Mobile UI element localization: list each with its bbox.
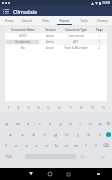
staticText: . — [92, 155, 93, 159]
staticText: Residential — [15, 40, 30, 44]
button[interactable]: 0 — [98, 103, 109, 112]
staticText: Tools — [80, 19, 88, 23]
button[interactable]: d — [28, 129, 39, 140]
button[interactable]: Enter — [105, 129, 111, 140]
staticText: x — [25, 143, 28, 149]
button[interactable]: 3 — [23, 103, 33, 112]
staticText: 1 — [7, 105, 10, 111]
button[interactable]: Backspace — [105, 118, 111, 129]
staticText: f — [44, 132, 46, 138]
button[interactable]: Report — [55, 16, 74, 25]
button[interactable]: 1 — [3, 103, 13, 112]
button[interactable]: Recent apps — [59, 168, 78, 180]
staticText: , — [20, 155, 21, 159]
staticText: Document Type — [65, 28, 87, 32]
staticText: 6 — [58, 105, 61, 111]
button[interactable]: 2 — [13, 103, 23, 112]
button[interactable]: 7 — [65, 103, 76, 112]
button[interactable]: Search — [18, 16, 36, 25]
button[interactable]: q — [1, 118, 12, 129]
button[interactable]: Home — [0, 16, 18, 25]
button[interactable]: v — [41, 140, 51, 151]
button[interactable]: Residential — [5, 39, 107, 45]
button[interactable]: t — [45, 118, 55, 129]
button[interactable]: ⇧ — [1, 140, 11, 151]
button[interactable]: f — [39, 129, 50, 140]
button[interactable]: ? — [91, 140, 101, 151]
button[interactable]: r — [34, 118, 45, 129]
button[interactable]: k — [83, 129, 94, 140]
button[interactable]: Back — [21, 168, 40, 180]
button[interactable]: s — [16, 129, 28, 140]
button[interactable]: w — [12, 118, 23, 129]
button[interactable]: History — [93, 16, 112, 25]
staticText: ?123 — [5, 155, 12, 159]
staticText: History — [97, 19, 108, 23]
staticText: 7 — [69, 105, 72, 111]
button[interactable]: x — [21, 140, 31, 151]
staticText: p — [99, 121, 102, 127]
button[interactable]: No — [5, 45, 107, 51]
staticText: Climsdale — [13, 8, 38, 15]
staticText: Page — [96, 28, 103, 32]
button[interactable]: m — [71, 140, 81, 151]
button[interactable]: p — [95, 118, 105, 129]
staticText: j — [77, 132, 79, 138]
staticText: ? — [95, 143, 97, 149]
staticText: 5 — [47, 105, 50, 111]
staticText: Active — [46, 40, 54, 44]
staticText: Report — [59, 19, 70, 23]
button[interactable]: b — [51, 140, 61, 151]
button[interactable]: View — [36, 16, 55, 25]
button[interactable]: ?123 — [1, 151, 16, 162]
button[interactable]: Tools — [74, 16, 93, 25]
staticText: ! — [85, 143, 87, 149]
button[interactable]: u — [65, 118, 75, 129]
button[interactable]: 9 — [87, 103, 98, 112]
button[interactable]: h — [61, 129, 72, 140]
staticText: Search — [22, 19, 32, 23]
button[interactable]: z — [11, 140, 21, 151]
staticText: No — [21, 46, 25, 50]
button[interactable]: l — [94, 129, 105, 140]
button[interactable]: i — [75, 118, 85, 129]
button[interactable]: Hide keyboard — [91, 168, 106, 180]
button[interactable]: 6 — [54, 103, 65, 112]
button[interactable]: ! — [81, 140, 91, 151]
button[interactable]: Emoji — [77, 151, 88, 162]
button[interactable]: e — [23, 118, 34, 129]
button[interactable]: 5 — [43, 103, 54, 112]
staticText: l — [99, 132, 101, 138]
button[interactable]: g — [50, 129, 61, 140]
staticText: Active — [46, 46, 54, 50]
button[interactable]: Home — [40, 168, 59, 180]
staticText: m — [74, 143, 78, 149]
staticText: s — [21, 132, 24, 138]
staticText: Fixed & Moveable — [64, 46, 88, 50]
button[interactable]: a — [4, 129, 16, 140]
button[interactable]: o — [85, 118, 95, 129]
staticText: c — [35, 143, 38, 149]
button[interactable]: ↵ — [96, 151, 111, 162]
button[interactable]: 8 — [76, 103, 87, 112]
button[interactable]: ⌫ — [101, 140, 111, 151]
button[interactable]: c — [31, 140, 41, 151]
button[interactable]: n — [61, 140, 71, 151]
button[interactable]: y — [55, 118, 65, 129]
staticText: d — [32, 132, 35, 138]
staticText: Version — [45, 28, 56, 32]
staticText: k — [87, 132, 90, 138]
button[interactable]: 4 — [33, 103, 43, 112]
staticText: 2 — [17, 105, 20, 111]
button[interactable]: Open navigation menu — [2, 7, 10, 15]
button[interactable]: j — [72, 129, 83, 140]
button[interactable]: , — [16, 151, 24, 162]
staticText: 1 — [98, 34, 100, 38]
button[interactable]: 00001 — [5, 33, 107, 39]
staticText: Active — [46, 34, 54, 38]
staticText: q — [5, 121, 8, 127]
staticText: Document Name — [11, 28, 35, 32]
staticText: g — [54, 132, 57, 138]
